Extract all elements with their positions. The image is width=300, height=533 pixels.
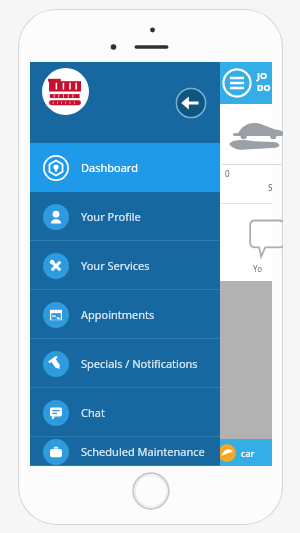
button[interactable]: Chat [30, 388, 220, 437]
staticText: Appointments [81, 307, 155, 322]
staticText: Your Profile [81, 209, 141, 224]
button[interactable]: Dashboard [30, 143, 220, 192]
staticText: Your Services [81, 258, 150, 273]
staticText: Chat [81, 405, 105, 420]
staticText: Dashboard [81, 160, 138, 175]
button[interactable]: Open navigation menu [222, 68, 252, 98]
staticText: Scheduled Maintenance [81, 444, 205, 459]
staticText: DO [257, 81, 271, 93]
button[interactable]: Appointments [30, 290, 220, 339]
staticText: Specials / Notifications [81, 356, 198, 371]
staticText: S [268, 182, 273, 193]
staticText: Yo [253, 263, 262, 274]
button[interactable]: Carfax [218, 444, 236, 462]
button[interactable]: Your Services [30, 241, 220, 290]
button[interactable]: Team Toyota [42, 68, 89, 115]
button[interactable]: Specials / Notifications [30, 339, 220, 388]
button[interactable]: Back [175, 87, 207, 119]
staticText: 0 [225, 168, 230, 179]
button[interactable]: Your Profile [30, 192, 220, 241]
button[interactable]: Scheduled Maintenance [30, 437, 220, 466]
staticText: car [241, 447, 255, 459]
staticText: JO [257, 69, 268, 81]
